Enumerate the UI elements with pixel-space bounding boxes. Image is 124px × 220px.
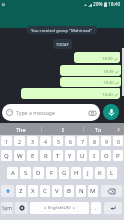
button[interactable]: ◂ <box>30 202 89 214</box>
staticText: G <box>62 169 67 177</box>
button[interactable]: T <box>53 150 63 161</box>
button[interactable]: P <box>113 150 123 161</box>
button[interactable]: 18:39 <box>60 65 121 76</box>
button[interactable]: 5 <box>53 136 63 146</box>
staticText: A <box>11 169 15 177</box>
button[interactable]: R <box>40 150 51 161</box>
staticText: 18:40 <box>102 92 113 98</box>
staticText: S <box>24 169 28 177</box>
staticText: 6 <box>69 138 72 145</box>
staticText: 20% <box>93 1 103 8</box>
button[interactable]: To <box>84 123 112 135</box>
button[interactable]: I <box>89 150 99 161</box>
staticText: . <box>95 204 97 212</box>
button[interactable]: 3 <box>27 136 38 146</box>
staticText: F <box>50 169 54 177</box>
button[interactable]: 18:40 <box>21 88 120 99</box>
staticText: ◂ <box>44 206 46 210</box>
staticText: I <box>62 126 64 133</box>
staticText: Z <box>19 187 23 195</box>
staticText: Q <box>4 152 9 160</box>
staticText: H <box>74 169 79 177</box>
button[interactable]: Q <box>1 150 12 161</box>
button[interactable]: X <box>28 185 38 197</box>
staticText: B <box>67 187 71 195</box>
button[interactable]: C <box>40 185 50 197</box>
button[interactable]: TODAY <box>53 39 72 49</box>
staticText: English(UK) <box>48 205 71 211</box>
button[interactable]: D <box>33 167 44 179</box>
button[interactable]: You created group "Mahiroad" <box>27 26 97 34</box>
button[interactable]: 6 <box>65 136 75 146</box>
button[interactable]: I <box>42 123 83 135</box>
staticText: To <box>95 126 102 133</box>
button[interactable]: H <box>71 167 81 179</box>
button[interactable]: F <box>46 167 57 179</box>
staticText: R <box>44 152 48 160</box>
button[interactable]: Y <box>65 150 75 161</box>
staticText: I <box>93 152 96 160</box>
button[interactable]: O <box>101 150 111 161</box>
staticText: Sym <box>2 205 12 212</box>
button[interactable]: 18:39 <box>74 52 120 63</box>
button[interactable]: Type a message <box>2 104 100 121</box>
staticText: 7 <box>81 138 84 145</box>
staticText: D <box>36 169 41 177</box>
staticText: 18:40 <box>103 80 114 86</box>
button[interactable]: Enter <box>104 202 122 214</box>
button[interactable]: Shift <box>1 185 14 197</box>
staticText: L <box>110 169 114 177</box>
staticText: You created group "Mahiroad" <box>31 27 93 33</box>
staticText: T <box>56 152 60 160</box>
staticText: 9 <box>105 138 108 145</box>
button[interactable]: Keyboard settings <box>15 202 28 214</box>
button[interactable]: J <box>83 167 93 179</box>
staticText: C <box>43 187 47 195</box>
button[interactable]: More suggestions <box>112 123 124 135</box>
staticText: P <box>116 152 120 160</box>
button[interactable]: L <box>107 167 117 179</box>
button[interactable]: K <box>95 167 105 179</box>
button[interactable]: Sym <box>1 202 13 214</box>
button[interactable]: Z <box>16 185 26 197</box>
staticText: 18:40 <box>108 1 121 8</box>
staticText: 0 <box>117 138 120 145</box>
button[interactable]: 18:40 <box>60 77 121 87</box>
staticText: 8 <box>93 138 96 145</box>
staticText: K <box>98 169 102 177</box>
button[interactable]: G <box>59 167 69 179</box>
staticText: The <box>16 126 26 133</box>
button[interactable]: S <box>20 167 31 179</box>
button[interactable]: 1 <box>1 136 12 146</box>
staticText: 1 <box>5 138 8 145</box>
button[interactable]: 2 <box>14 136 25 146</box>
staticText: O <box>104 152 109 160</box>
staticText: X <box>31 187 35 195</box>
button[interactable]: 7 <box>77 136 87 146</box>
button[interactable]: A <box>7 167 18 179</box>
button[interactable]: The <box>0 123 41 135</box>
button[interactable]: M <box>88 185 98 197</box>
staticText: E <box>31 152 35 160</box>
button[interactable]: 4 <box>40 136 51 146</box>
button[interactable]: Record voice message <box>103 104 119 120</box>
button[interactable]: N <box>76 185 86 197</box>
staticText: U <box>80 152 85 160</box>
button[interactable]: U <box>77 150 87 161</box>
button[interactable]: Backspace <box>101 185 122 197</box>
button[interactable]: 0 <box>113 136 123 146</box>
button[interactable]: W <box>14 150 25 161</box>
button[interactable]: B <box>64 185 74 197</box>
button[interactable]: 9 <box>101 136 111 146</box>
staticText: 5 <box>57 138 60 145</box>
button[interactable]: 8 <box>89 136 99 146</box>
staticText: N <box>79 187 84 195</box>
button[interactable]: E <box>27 150 38 161</box>
staticText: W <box>17 152 23 160</box>
staticText: 18:39 <box>103 69 114 75</box>
button[interactable]: V <box>52 185 62 197</box>
button[interactable]: . <box>91 202 101 214</box>
staticText: M <box>90 187 96 195</box>
staticText: 18:39 <box>102 56 113 62</box>
staticText: 2 <box>18 138 21 145</box>
